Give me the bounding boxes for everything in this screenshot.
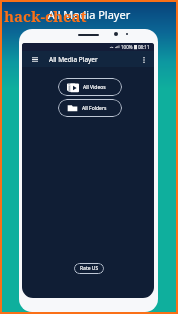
- staticText: hack-cheat: [4, 6, 87, 26]
- button[interactable]: Rate US: [74, 263, 104, 274]
- button[interactable]: All Videos: [58, 78, 122, 96]
- button[interactable]: All Folders: [58, 99, 122, 117]
- staticText: All Videos: [83, 84, 106, 91]
- button[interactable]: Menu: [30, 55, 39, 64]
- staticText: Rate US: [80, 265, 99, 272]
- staticText: 100%: [121, 44, 133, 50]
- staticText: All Folders: [82, 105, 107, 112]
- button[interactable]: More options: [139, 55, 148, 64]
- staticText: All Media Player: [0, 7, 178, 22]
- staticText: 08:11: [138, 44, 150, 50]
- staticText: All Media Player: [49, 55, 98, 64]
